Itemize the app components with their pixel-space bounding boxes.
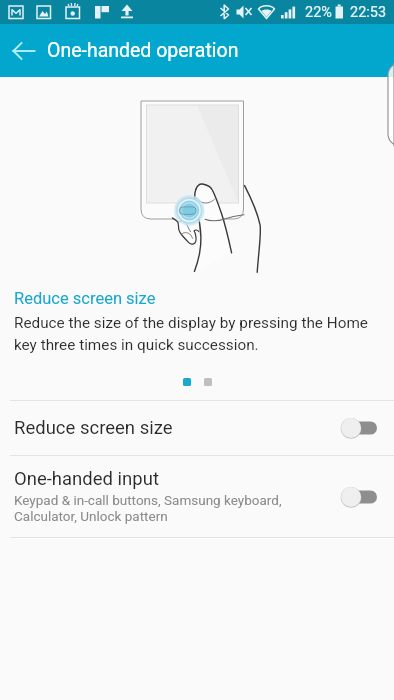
staticText: Reduce screen size	[14, 417, 173, 439]
button[interactable]: Navigate up	[0, 24, 47, 77]
button[interactable]: Reduce screen size	[0, 401, 394, 455]
button[interactable]: Page 1	[183, 378, 191, 386]
button[interactable]: Toggle switch, off	[334, 414, 380, 442]
staticText: Reduce the size of the display by pressi…	[14, 314, 382, 354]
button[interactable]: One-handed input	[0, 456, 394, 537]
button[interactable]: Page 2	[204, 378, 212, 386]
staticText: Keypad & in-call buttons, Samsung keyboa…	[14, 492, 282, 525]
button[interactable]: Reduce screen size	[14, 289, 156, 308]
staticText: One-handed input	[14, 468, 159, 490]
staticText: 22:53	[350, 4, 387, 21]
staticText: One-handed operation	[47, 39, 239, 62]
button[interactable]: Edge panel handle	[372, 63, 394, 146]
button[interactable]: Toggle switch, off	[334, 483, 380, 511]
staticText: 22%	[305, 4, 332, 21]
